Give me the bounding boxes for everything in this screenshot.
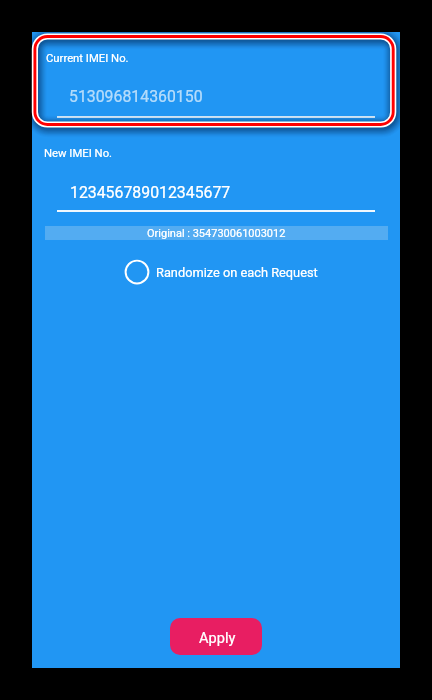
staticText: Randomize on each Request [156,265,318,280]
staticText: 123456789012345677 [70,183,231,202]
other: Randomize on each Request, off [124,259,150,285]
button[interactable]: Current IMEI No. [36,44,396,120]
button[interactable]: Randomize on each Request, off [124,259,318,285]
button[interactable]: New IMEI No. [36,139,396,215]
button[interactable]: Apply [170,618,262,655]
staticText: 513096814360150 [69,87,203,106]
staticText: Current IMEI No. [46,52,129,65]
staticText: Original : 354730061003012 [147,227,286,240]
staticText: Apply [199,629,236,646]
staticText: New IMEI No. [44,147,113,160]
